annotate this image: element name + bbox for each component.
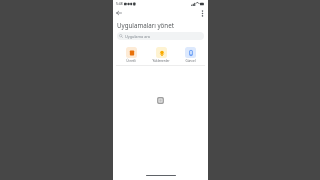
button[interactable]: Ücretli	[117, 46, 145, 64]
button[interactable]: Back	[113, 7, 125, 19]
button[interactable]: Güncel	[176, 46, 204, 64]
staticText: Uygulama ara	[125, 34, 150, 39]
button[interactable]: Uygulama ara	[117, 32, 204, 40]
staticText: Uygulamaları yönet	[117, 21, 174, 29]
staticText: Yüklenenler	[152, 59, 170, 63]
staticText: Güncel	[185, 59, 196, 63]
button[interactable]: More options	[196, 7, 208, 19]
staticText: 5:48	[116, 1, 123, 6]
button[interactable]: Yüklenenler	[147, 46, 175, 64]
staticText: Ücretli	[126, 59, 136, 63]
